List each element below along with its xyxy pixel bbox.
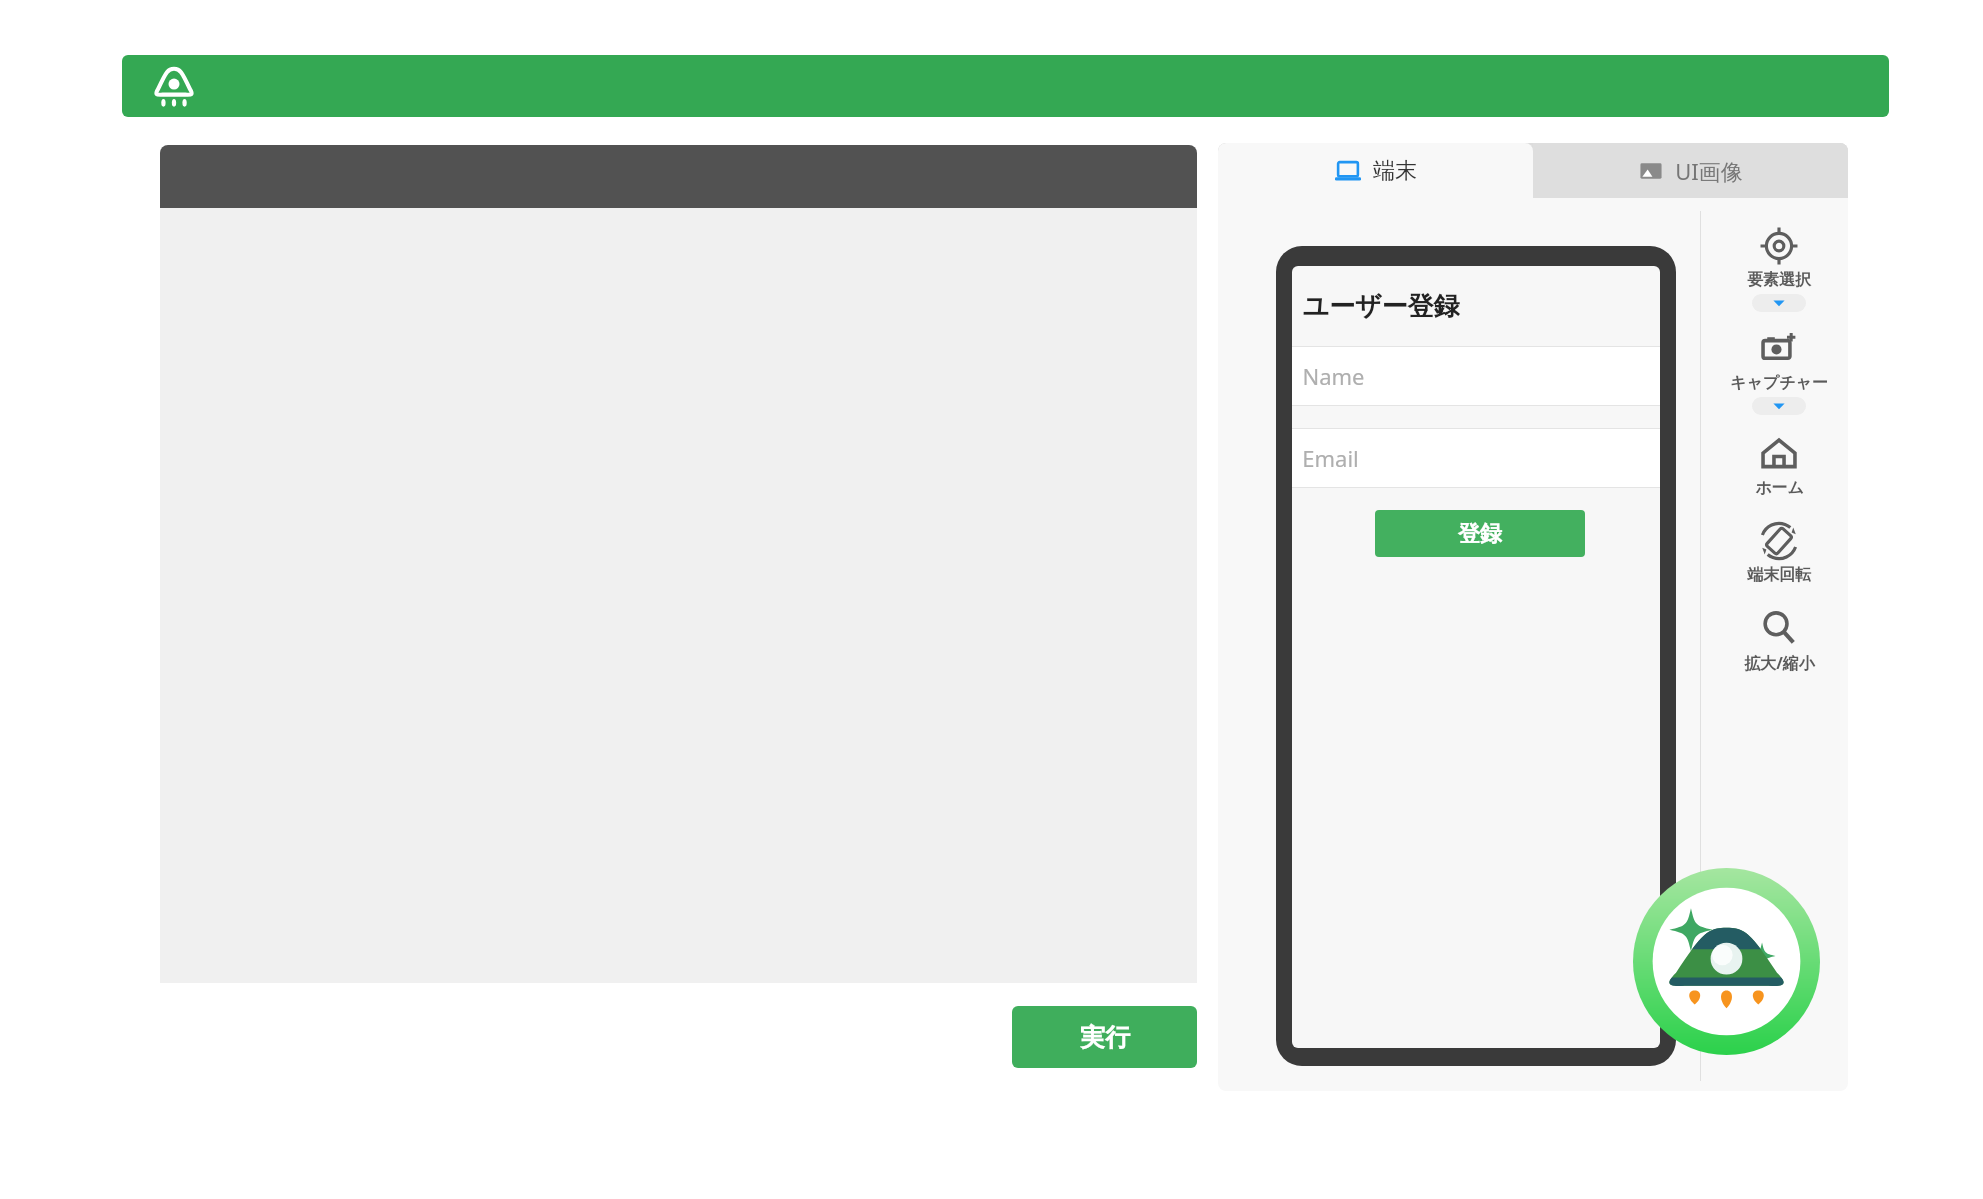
button[interactable]: キャプチャー: [1710, 326, 1848, 417]
button[interactable]: [160, 145, 1197, 208]
staticText: 端末: [1373, 157, 1417, 185]
staticText: 登録: [1458, 520, 1502, 548]
button[interactable]: Name: [1292, 347, 1660, 405]
staticText: 要素選択: [1747, 270, 1811, 290]
staticText: ホーム: [1755, 478, 1804, 498]
button[interactable]: App logo: [122, 55, 1889, 117]
button[interactable]: Email: [1292, 429, 1660, 487]
button[interactable]: 実行: [1012, 1006, 1197, 1068]
staticText: 実行: [1080, 1022, 1130, 1053]
staticText: 端末回転: [1747, 565, 1811, 585]
button[interactable]: App logo: [150, 62, 198, 110]
button[interactable]: 要素選択: [1710, 223, 1848, 314]
button[interactable]: 拡大/縮小: [1710, 605, 1848, 676]
button[interactable]: 登録: [1375, 510, 1585, 557]
staticText: Name: [1302, 361, 1365, 391]
button[interactable]: 端末: [1218, 143, 1533, 198]
button[interactable]: 端末回転: [1710, 518, 1848, 587]
button[interactable]: ホーム: [1710, 431, 1848, 500]
staticText: ユーザー登録: [1302, 290, 1460, 323]
button[interactable]: ユーザー登録: [1276, 246, 1676, 1066]
button[interactable]: ユーザー登録: [1292, 266, 1660, 346]
button[interactable]: UI画像: [1533, 143, 1848, 198]
staticText: UI画像: [1675, 156, 1743, 186]
staticText: キャプチャー: [1730, 373, 1828, 393]
staticText: 拡大/縮小: [1744, 652, 1815, 674]
button[interactable]: Assistant: [1633, 868, 1820, 1055]
staticText: Email: [1302, 443, 1359, 473]
